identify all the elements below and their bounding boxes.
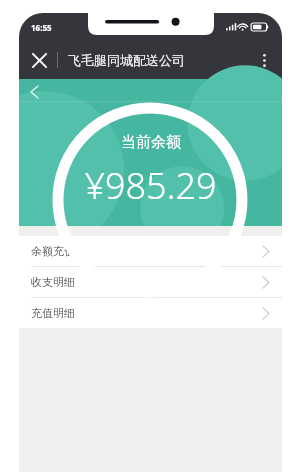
button[interactable]: More options: [249, 45, 279, 75]
button[interactable]: 充值明细: [19, 298, 282, 328]
button[interactable]: 余额充值: [19, 236, 282, 266]
staticText: 飞毛腿同城配送公司: [68, 52, 185, 68]
staticText: 收支明细: [31, 275, 75, 289]
staticText: 当前余额: [121, 133, 181, 152]
button[interactable]: Close: [23, 44, 55, 76]
button[interactable]: 收支明细: [19, 267, 282, 297]
staticText: ¥985.29: [84, 161, 217, 210]
button[interactable]: Back: [21, 79, 47, 105]
staticText: 16:55: [31, 22, 52, 33]
staticText: 充值明细: [31, 306, 75, 320]
staticText: 余额充值: [31, 244, 75, 258]
